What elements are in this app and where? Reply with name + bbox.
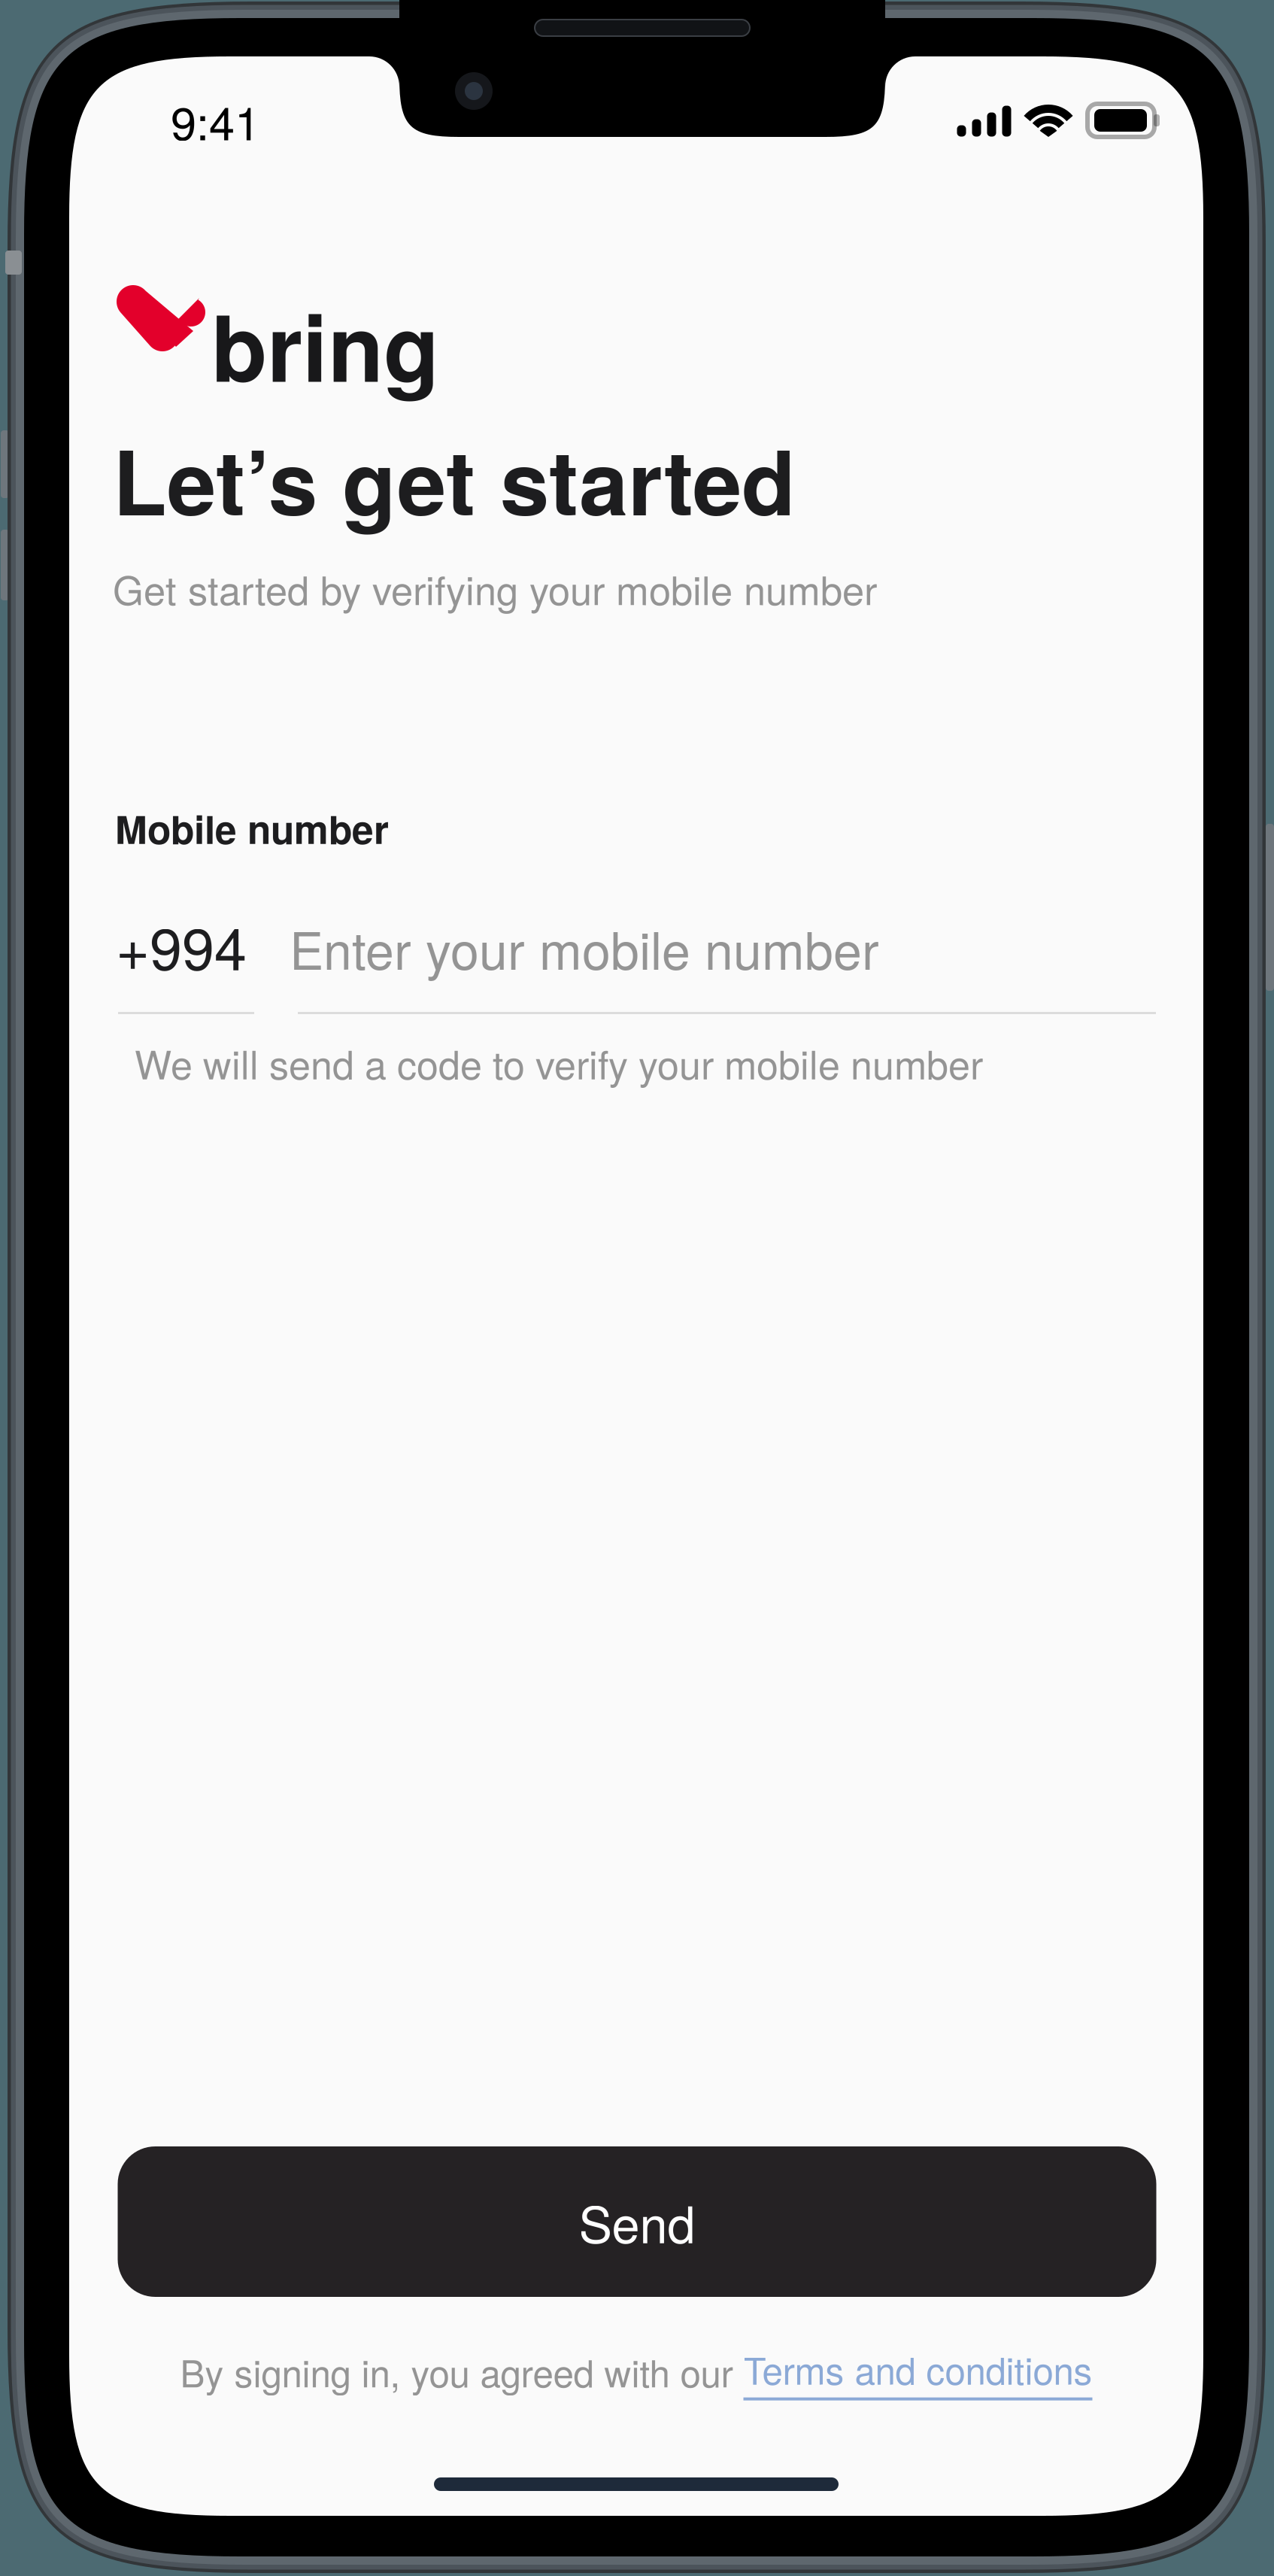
staticText: Let’s get started bbox=[113, 416, 796, 542]
staticText: bring bbox=[211, 279, 439, 410]
staticText: By signing in, you agreed with our bbox=[180, 2345, 743, 2398]
staticText: Send bbox=[579, 2186, 695, 2258]
staticText: We will send a code to verify your mobil… bbox=[135, 1034, 983, 1091]
staticText: Enter your mobile number bbox=[290, 911, 879, 984]
staticText: +994 bbox=[116, 904, 247, 987]
button[interactable]: Send bbox=[118, 2146, 1156, 2297]
staticText: Mobile number bbox=[115, 800, 389, 856]
button[interactable]: Terms and conditions bbox=[743, 2342, 1092, 2400]
staticText: 9:41 bbox=[171, 87, 260, 153]
staticText: Get started by verifying your mobile num… bbox=[113, 560, 877, 616]
staticText: Terms and conditions bbox=[743, 2342, 1092, 2395]
